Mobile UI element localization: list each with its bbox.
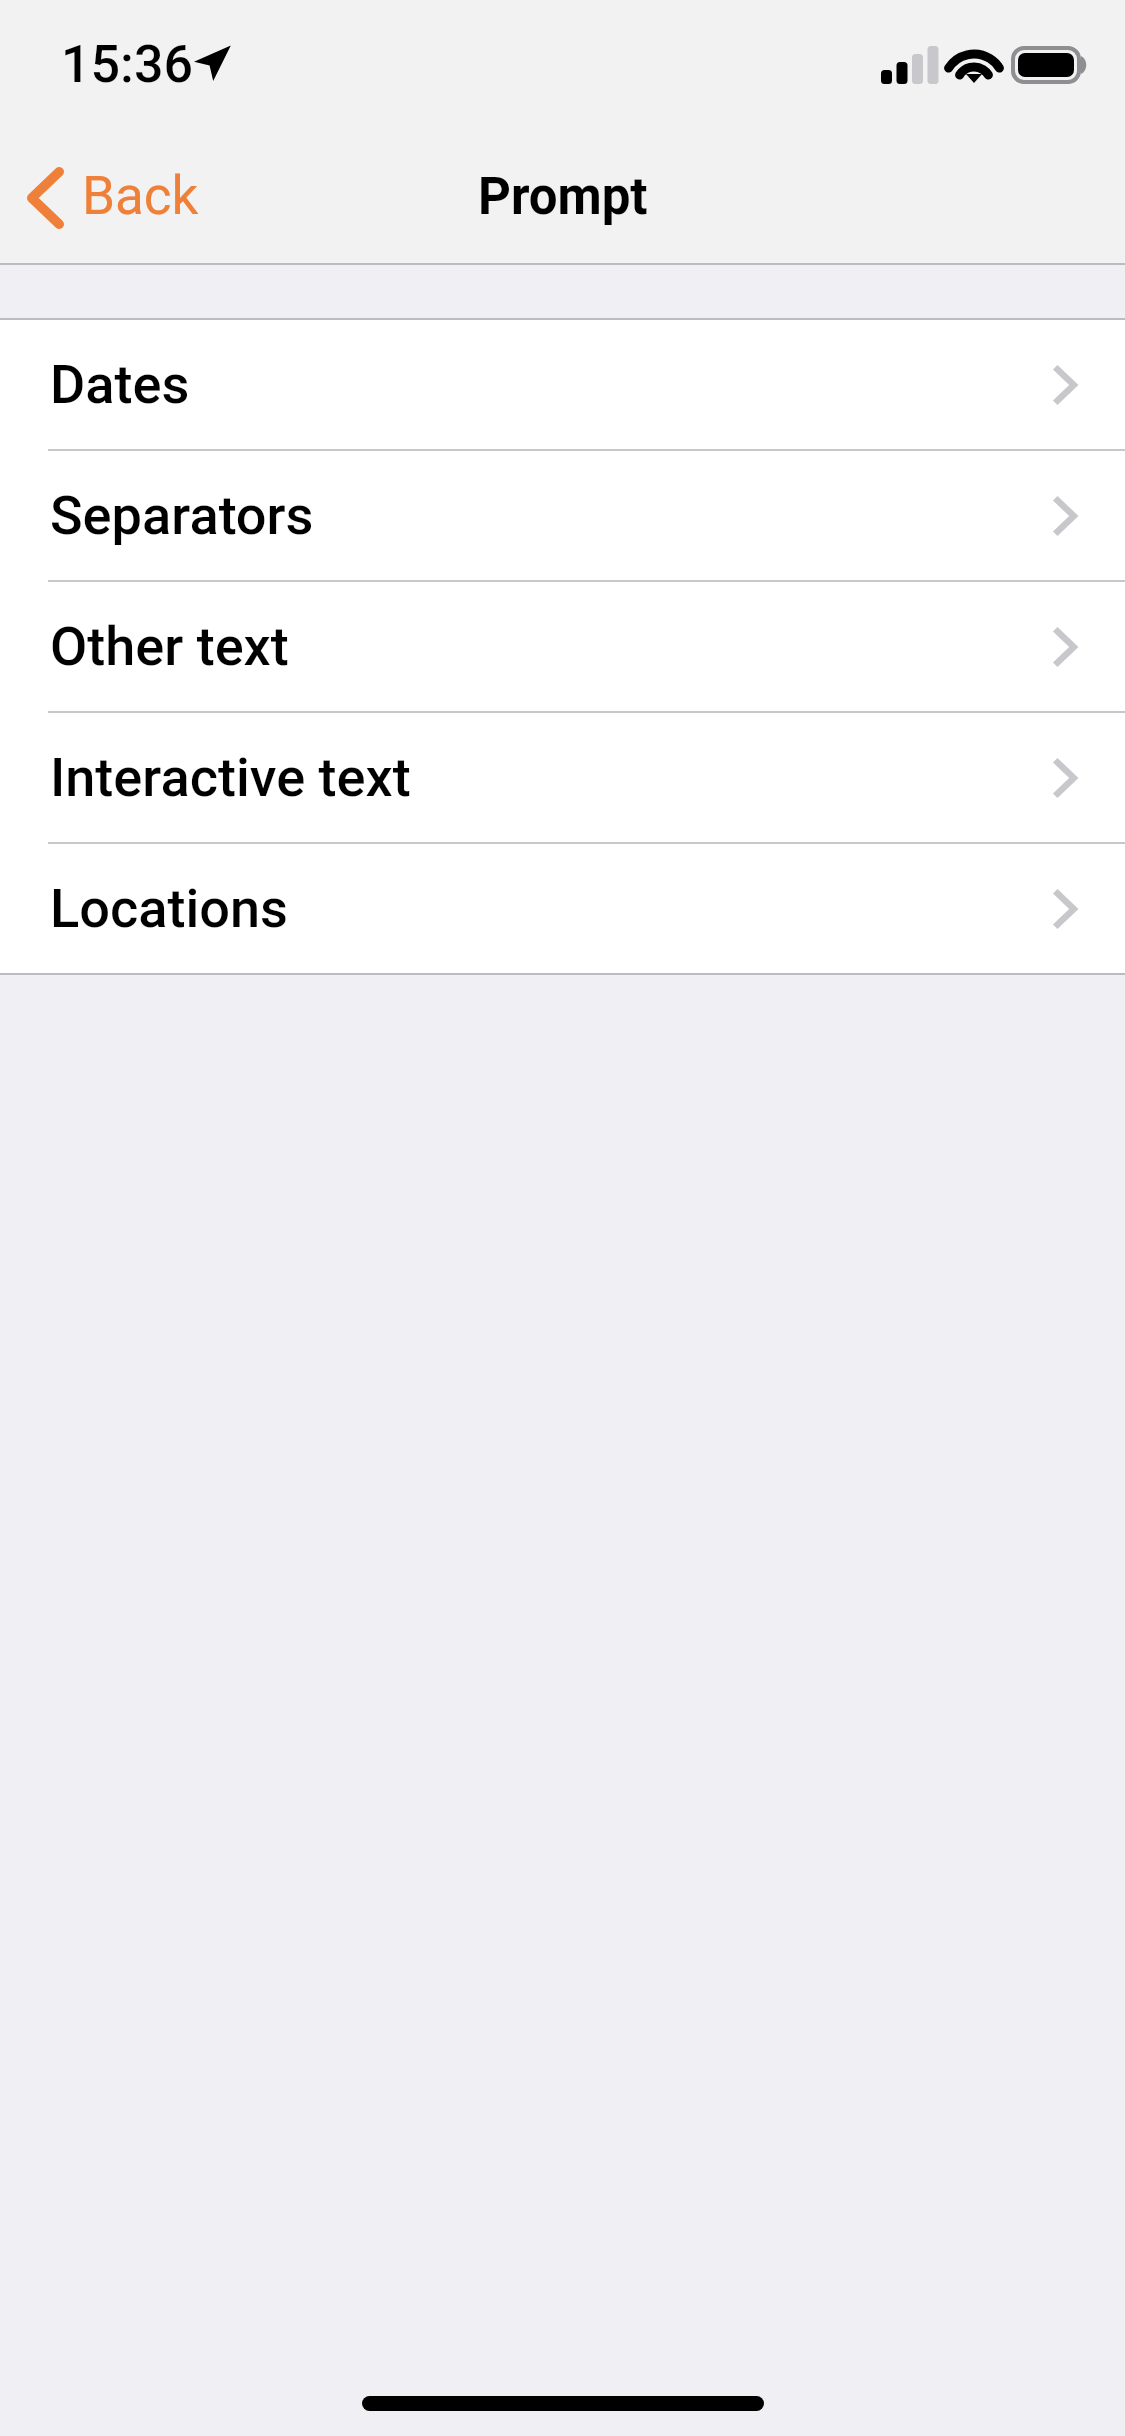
staticText: Interactive text <box>50 746 411 809</box>
staticText: Locations <box>50 877 288 940</box>
staticText: Prompt <box>478 167 648 227</box>
button[interactable]: Other text <box>0 582 1125 711</box>
button[interactable]: Locations <box>0 844 1125 973</box>
button[interactable]: Interactive text <box>0 713 1125 842</box>
staticText: 15:36 <box>61 34 194 95</box>
staticText: Dates <box>50 353 190 416</box>
other: Location active <box>192 43 232 83</box>
button[interactable]: Back <box>0 132 199 263</box>
staticText: Separators <box>50 484 314 547</box>
button[interactable]: Separators <box>0 451 1125 580</box>
staticText: Other text <box>50 615 289 678</box>
button[interactable]: Dates <box>0 320 1125 449</box>
staticText: Back <box>82 165 199 227</box>
